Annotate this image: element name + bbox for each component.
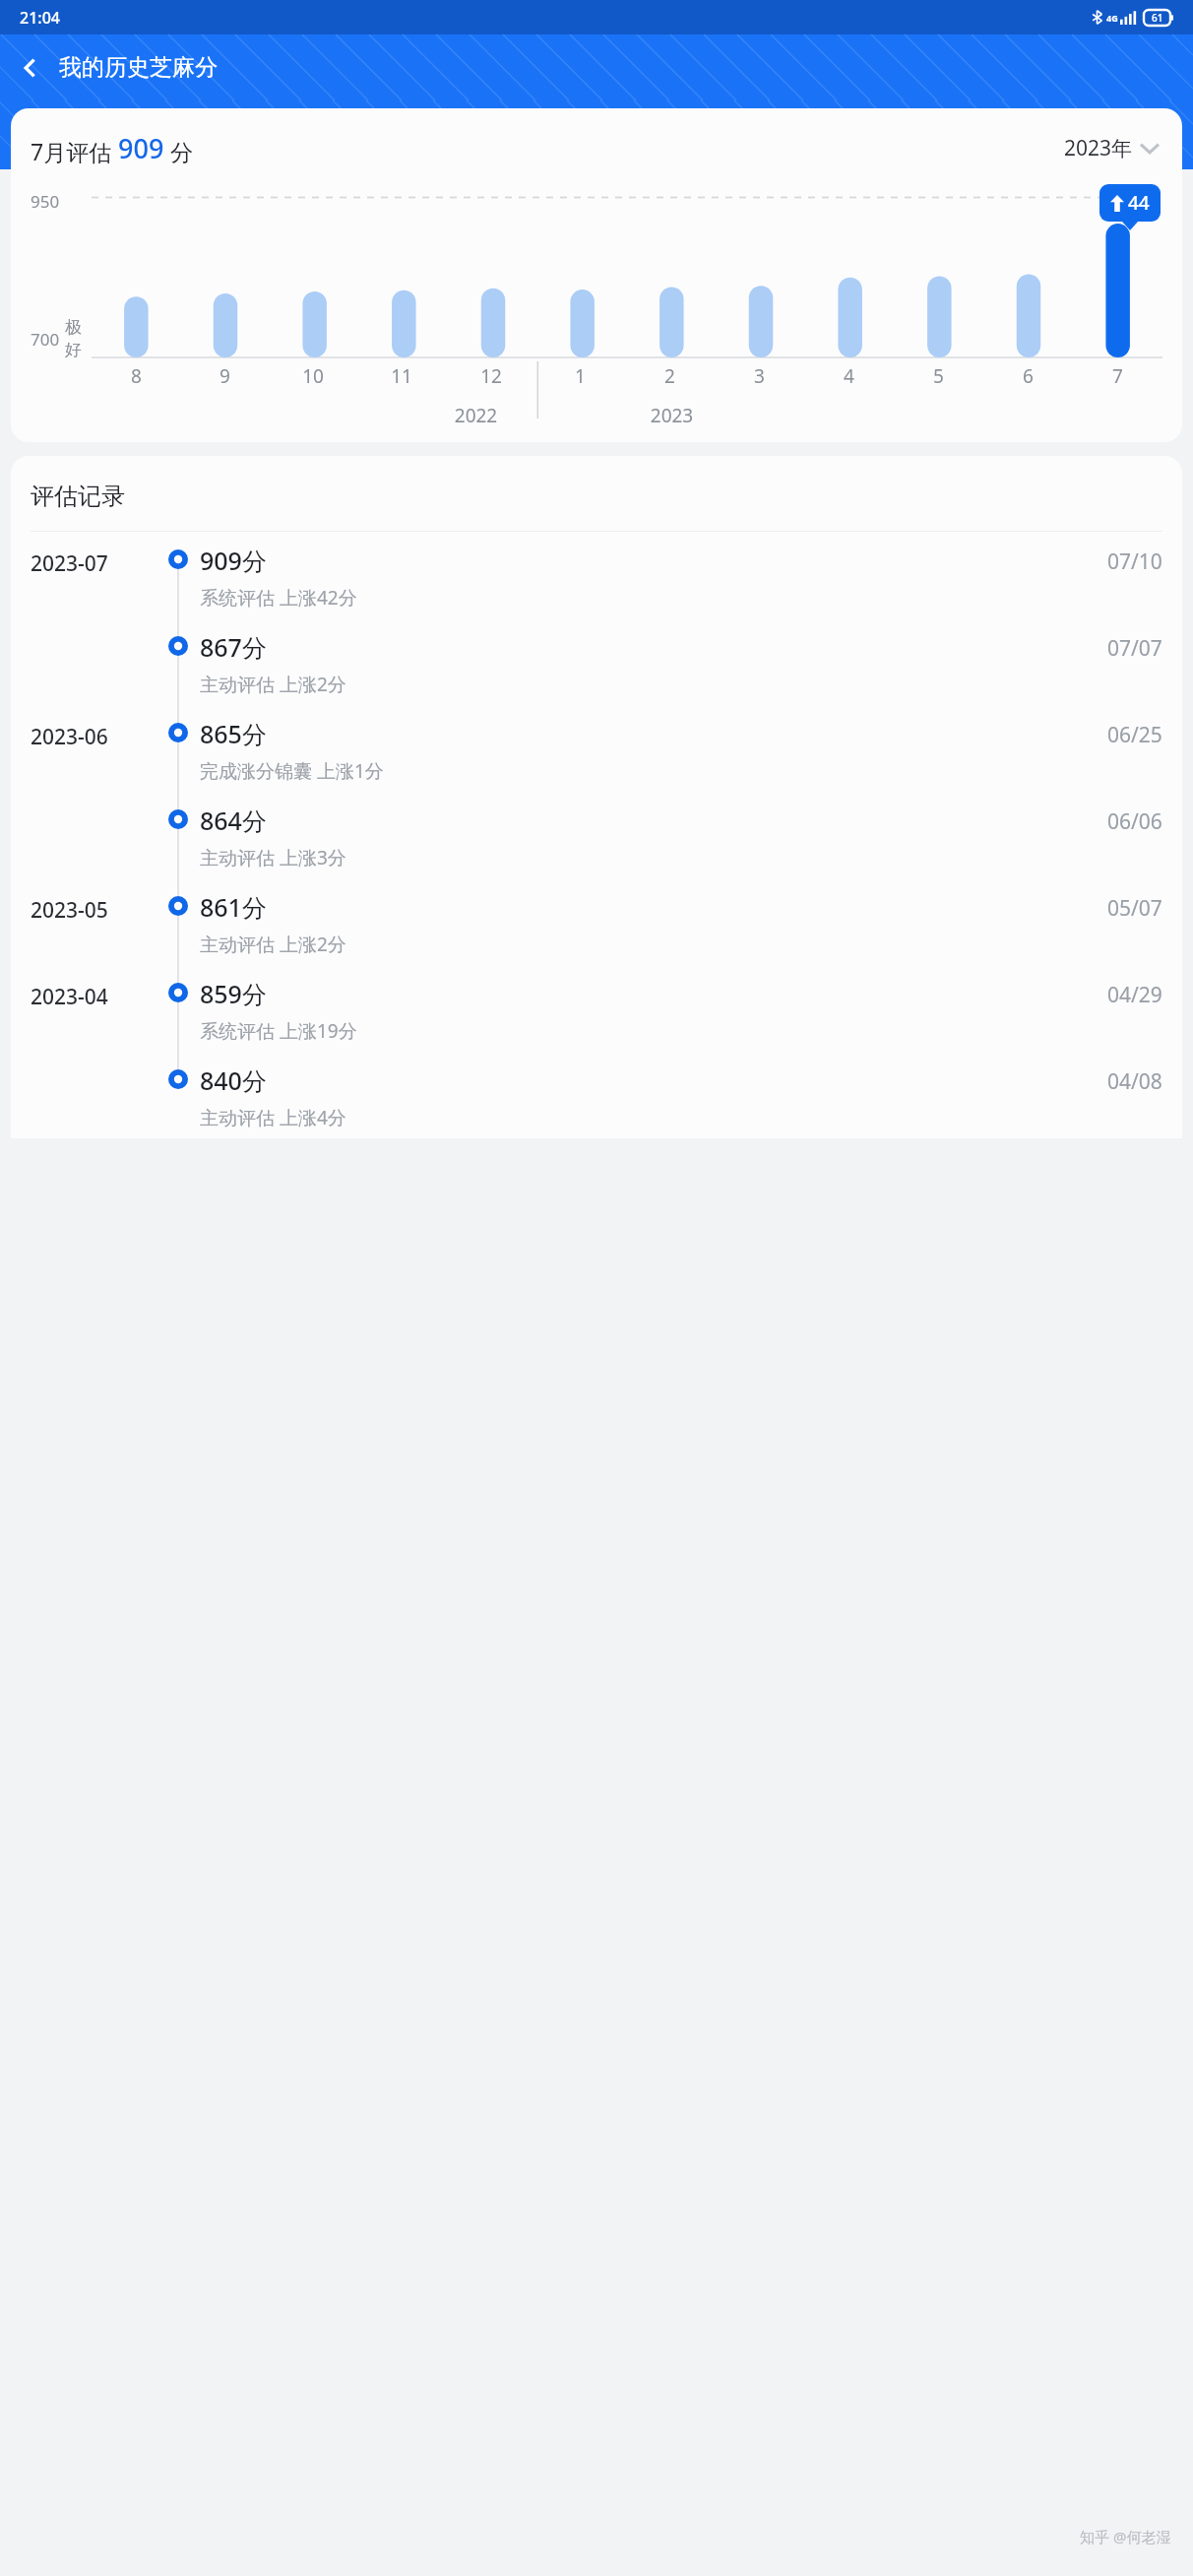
button[interactable]: 2023-06 <box>31 705 1162 792</box>
staticText: 7月评估 <box>31 136 118 166</box>
staticText: 04/08 <box>1107 1067 1162 1096</box>
staticText: 864分 <box>200 804 267 837</box>
staticText: 04/29 <box>1107 981 1162 1009</box>
button[interactable]: 2023-07 <box>31 532 1162 618</box>
button[interactable]: 2023-04 <box>31 965 1162 1052</box>
button[interactable]: 2023年 <box>1060 130 1162 166</box>
staticText: 867分 <box>200 630 267 664</box>
staticText: 11 <box>391 363 412 389</box>
staticText: 909 <box>118 130 164 166</box>
staticText: 2023-04 <box>31 983 108 1011</box>
staticText: 4 <box>844 363 854 389</box>
staticText: 05/07 <box>1107 894 1162 923</box>
staticText: 909分 <box>200 544 267 577</box>
staticText: 21:04 <box>20 7 60 29</box>
staticText: 1 <box>575 363 586 389</box>
button[interactable]: 2023-05 <box>31 878 1162 965</box>
staticText: 61 <box>1152 11 1163 25</box>
staticText: 4G <box>1106 12 1118 24</box>
staticText: 知乎 @何老湿 <box>1080 2527 1171 2546</box>
staticText: 44 <box>1128 190 1150 216</box>
staticText: 评估记录 <box>31 482 125 511</box>
staticText: 9 <box>220 363 230 389</box>
staticText: 06/25 <box>1107 721 1162 749</box>
staticText: 12 <box>480 363 502 389</box>
staticText: 主动评估 上涨3分 <box>200 845 346 870</box>
staticText: 2022 <box>378 403 574 428</box>
button[interactable]: 840分 <box>31 1052 1162 1138</box>
staticText: 主动评估 上涨2分 <box>200 672 346 697</box>
staticText: 8 <box>131 363 142 389</box>
staticText: 3 <box>754 363 765 389</box>
staticText: 06/06 <box>1107 807 1162 836</box>
staticText: 07/10 <box>1107 547 1162 576</box>
staticText: 10 <box>302 363 324 389</box>
staticText: 分 <box>164 136 193 166</box>
staticText: 2023-05 <box>31 896 108 925</box>
staticText: 2023-07 <box>31 549 108 578</box>
staticText: 5 <box>933 363 944 389</box>
staticText: 700 <box>31 328 60 351</box>
staticText: 2 <box>664 363 675 389</box>
button[interactable]: 867分 <box>31 618 1162 705</box>
staticText: 950 <box>31 190 60 213</box>
staticText: 7 <box>1112 363 1123 389</box>
staticText: 859分 <box>200 977 267 1010</box>
staticText: 系统评估 上涨19分 <box>200 1018 357 1044</box>
staticText: 6 <box>1023 363 1034 389</box>
staticText: 2023年 <box>1064 134 1133 162</box>
staticText: 2023-06 <box>31 723 108 751</box>
staticText: 极好 <box>65 317 92 360</box>
staticText: 我的历史芝麻分 <box>59 53 218 82</box>
button[interactable]: 7月评估 <box>11 108 1182 442</box>
staticText: 主动评估 上涨2分 <box>200 932 346 957</box>
button[interactable]: Back <box>8 45 53 91</box>
staticText: 2023 <box>574 403 770 428</box>
staticText: 主动评估 上涨4分 <box>200 1105 346 1130</box>
staticText: 完成涨分锦囊 上涨1分 <box>200 758 384 784</box>
staticText: 865分 <box>200 717 267 750</box>
staticText: 840分 <box>200 1063 267 1097</box>
staticText: 861分 <box>200 890 267 924</box>
staticText: 07/07 <box>1107 634 1162 663</box>
button[interactable]: 864分 <box>31 792 1162 878</box>
staticText: 系统评估 上涨42分 <box>200 585 357 611</box>
